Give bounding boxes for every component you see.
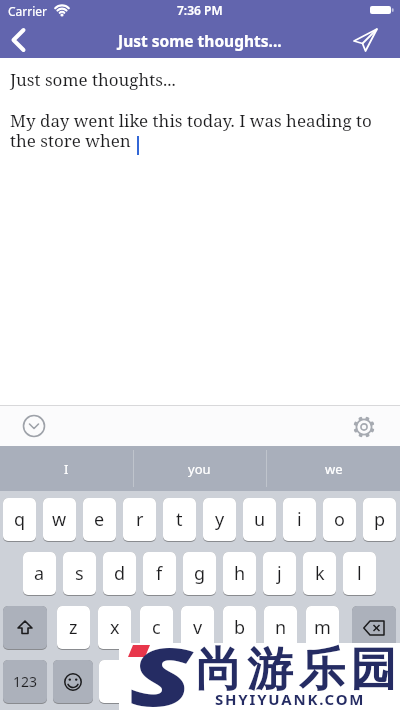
staticText: c <box>152 615 161 640</box>
staticText: y <box>215 507 225 532</box>
button[interactable]: p <box>363 498 396 542</box>
button[interactable]: u <box>243 498 276 542</box>
button[interactable] <box>20 412 48 440</box>
staticText: Just some thoughts... <box>118 30 282 51</box>
button[interactable]: v <box>181 606 214 650</box>
button[interactable]: q <box>3 498 36 542</box>
staticText: m <box>314 615 331 640</box>
staticText: p <box>374 507 386 532</box>
button[interactable]: b <box>223 606 256 650</box>
staticText: j <box>277 561 282 586</box>
button[interactable]: I <box>0 446 133 491</box>
button[interactable]: i <box>283 498 316 542</box>
staticText: 7:36 PM <box>177 2 223 18</box>
button[interactable]: n <box>264 606 297 650</box>
button[interactable]: j <box>263 552 296 596</box>
staticText: x <box>110 615 120 640</box>
button[interactable]: e <box>83 498 116 542</box>
button[interactable]: t <box>163 498 196 542</box>
staticText: z <box>69 615 78 640</box>
button[interactable]: you <box>133 446 266 491</box>
staticText: My day went like this today. I was headi… <box>10 109 372 152</box>
button[interactable] <box>352 606 396 650</box>
staticText: o <box>334 507 345 532</box>
button[interactable]: w <box>43 498 76 542</box>
staticText: g <box>194 561 206 586</box>
button[interactable] <box>0 22 44 58</box>
staticText: n <box>275 615 287 640</box>
button[interactable]: o <box>323 498 356 542</box>
button[interactable]: l <box>343 552 376 596</box>
staticText: t <box>176 507 183 532</box>
staticText: i <box>297 507 302 532</box>
button[interactable] <box>344 22 388 58</box>
staticText: we <box>325 460 343 478</box>
button[interactable]: a <box>23 552 56 596</box>
staticText: S <box>129 620 193 710</box>
staticText: u <box>254 507 266 532</box>
button[interactable]: h <box>223 552 256 596</box>
button[interactable]: y <box>203 498 236 542</box>
button[interactable]: 123 <box>3 660 47 704</box>
button[interactable]: f <box>143 552 176 596</box>
staticText: I <box>64 460 69 478</box>
staticText: e <box>94 507 105 532</box>
button[interactable] <box>299 660 396 704</box>
button[interactable] <box>53 660 93 704</box>
staticText: w <box>52 507 67 532</box>
button[interactable]: r <box>123 498 156 542</box>
staticText: h <box>234 561 246 586</box>
staticText: Carrier <box>8 3 48 19</box>
staticText: you <box>188 460 211 478</box>
staticText: a <box>34 561 45 586</box>
staticText: b <box>234 615 246 640</box>
button[interactable]: k <box>303 552 336 596</box>
staticText: q <box>14 507 26 532</box>
staticText: r <box>136 507 144 532</box>
staticText: v <box>193 615 203 640</box>
staticText: l <box>357 561 362 586</box>
button[interactable]: g <box>183 552 216 596</box>
button[interactable] <box>350 413 378 441</box>
button[interactable]: we <box>267 446 400 491</box>
button[interactable] <box>99 660 293 704</box>
button[interactable]: m <box>306 606 339 650</box>
staticText: Just some thoughts... <box>10 68 176 91</box>
staticText: s <box>75 561 84 586</box>
staticText: k <box>315 561 325 586</box>
staticText: 123 <box>13 672 38 691</box>
button[interactable]: s <box>63 552 96 596</box>
staticText: f <box>156 561 163 586</box>
button[interactable] <box>3 606 47 650</box>
staticText: 尚游乐园 <box>193 641 399 699</box>
button[interactable]: z <box>57 606 90 650</box>
button[interactable]: d <box>103 552 136 596</box>
button[interactable]: x <box>98 606 131 650</box>
staticText: d <box>114 561 126 586</box>
staticText: SHYIYUANK.COM <box>215 689 366 709</box>
button[interactable]: c <box>140 606 173 650</box>
